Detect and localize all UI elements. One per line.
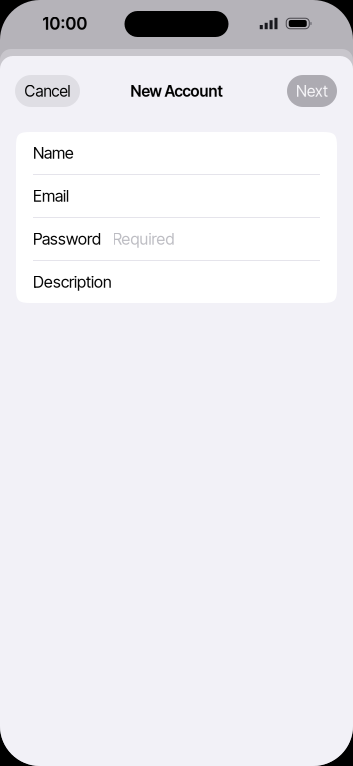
staticText: Password [33,229,101,249]
staticText: Name [33,143,74,163]
staticText: Description [33,272,112,292]
staticText: New Account [130,82,222,100]
staticText: Required [112,229,174,249]
button[interactable]: Description [16,261,337,303]
button[interactable]: Cancel [15,75,80,107]
staticText: Email [33,186,69,206]
staticText: 10:00 [42,13,87,34]
button[interactable]: Email [16,175,337,217]
button[interactable]: Next [287,75,337,107]
staticText: Cancel [24,82,70,100]
staticText: Next [296,82,328,100]
button[interactable]: Password [16,218,337,260]
button[interactable]: Name [16,132,337,174]
